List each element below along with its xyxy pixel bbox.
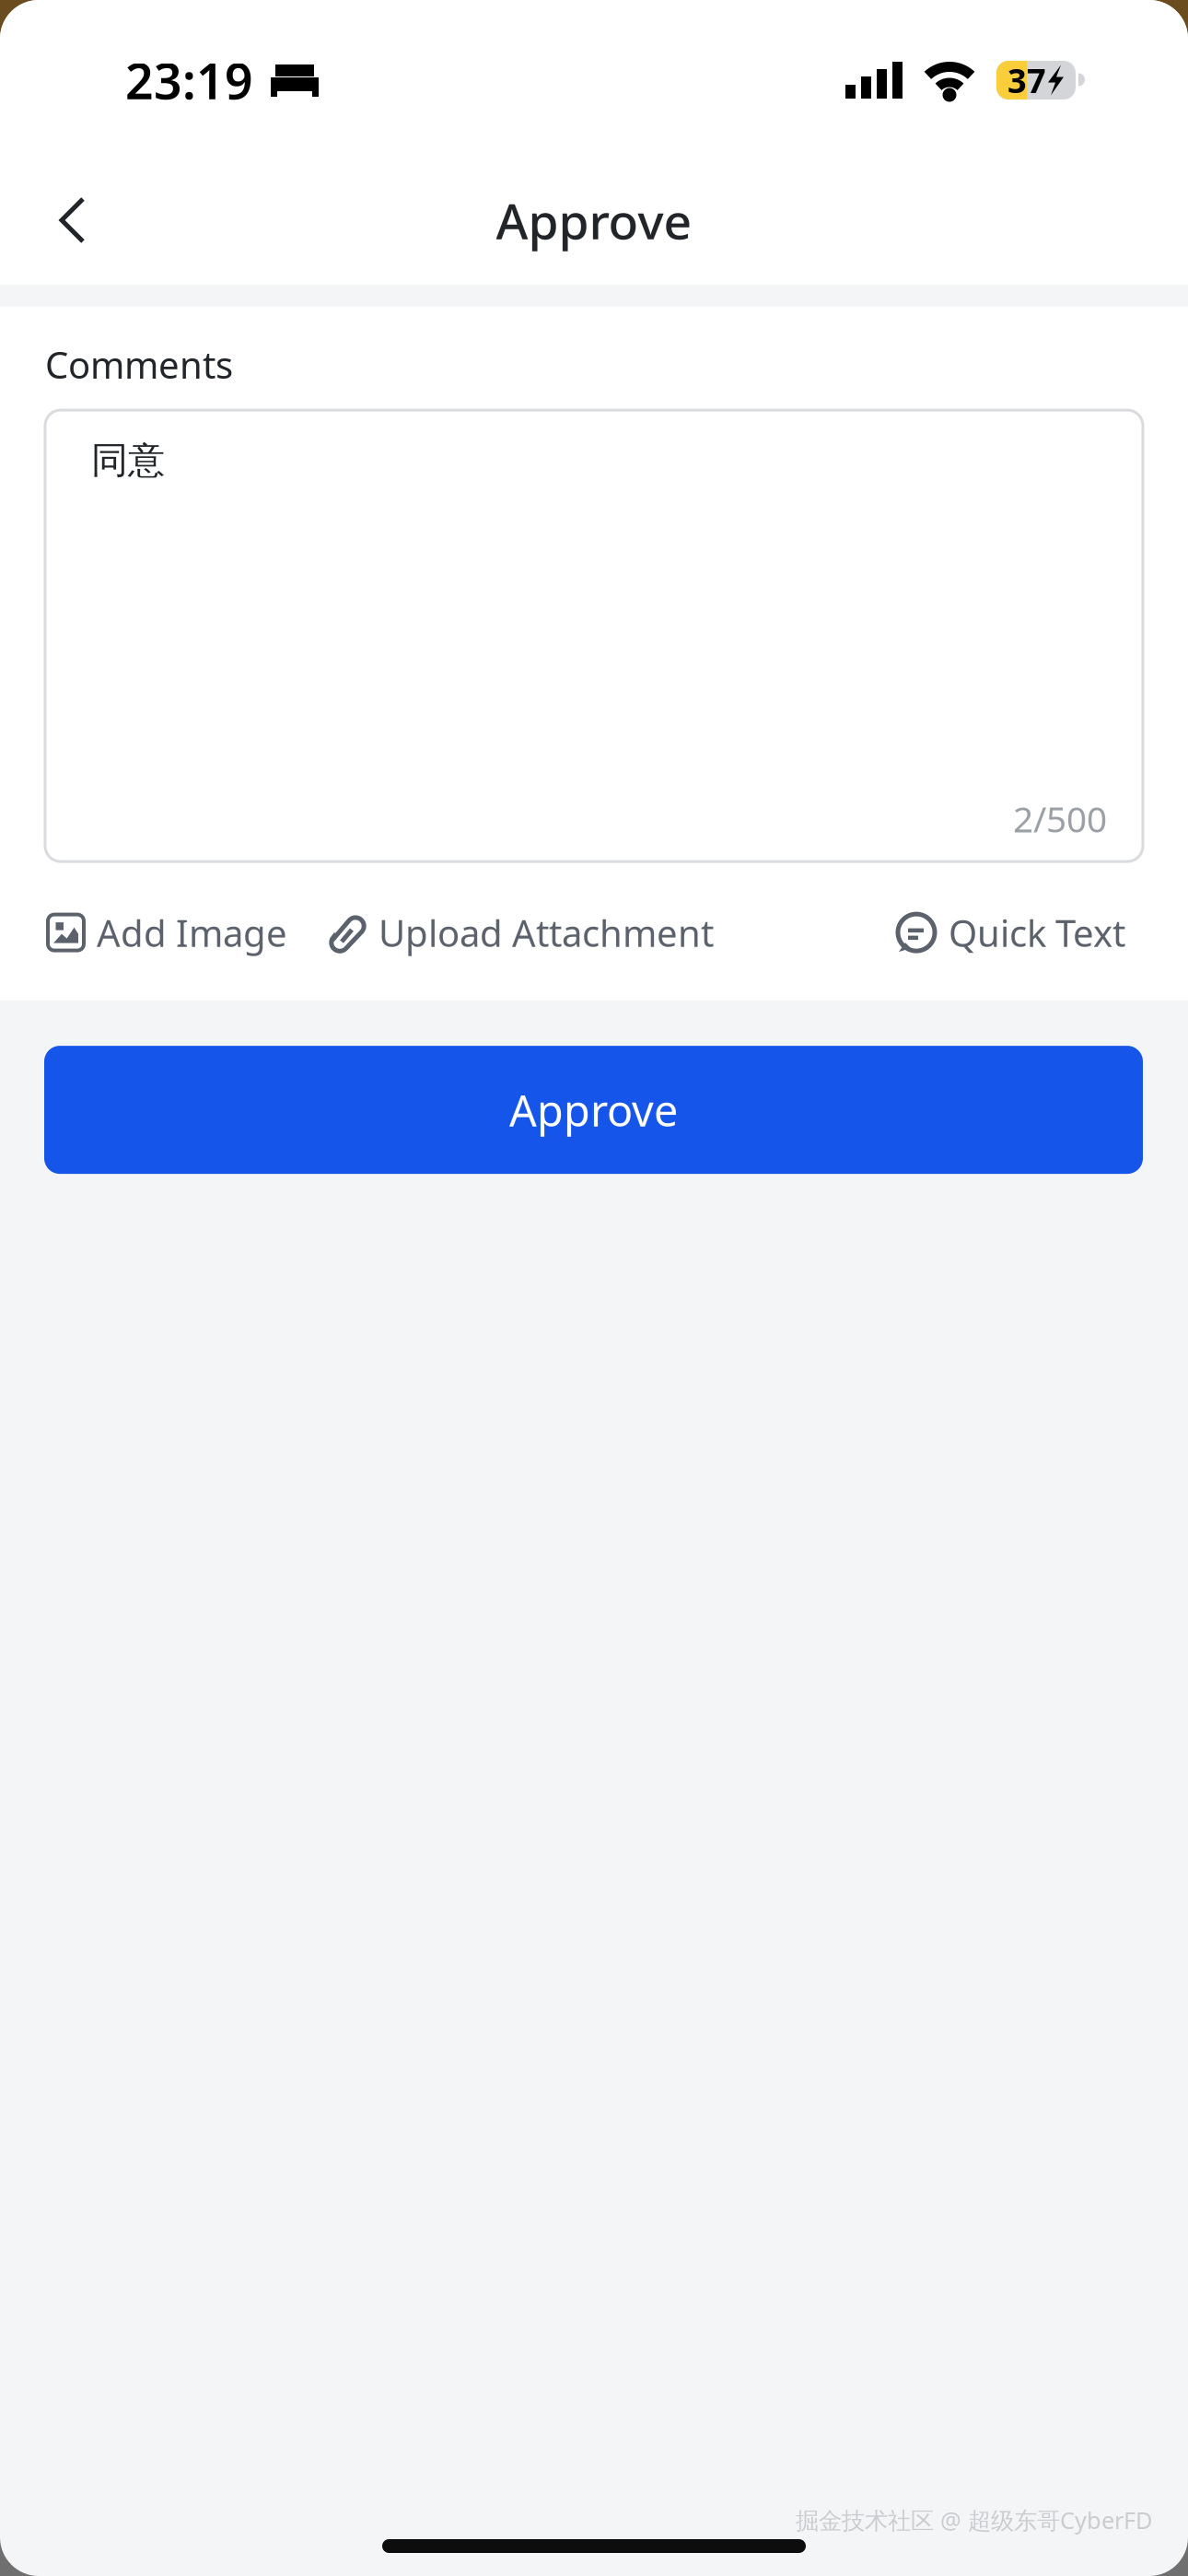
staticText: 2/500: [1013, 795, 1107, 842]
staticText: Upload Attachment: [379, 908, 714, 957]
button[interactable]: Approve: [44, 1046, 1143, 1174]
staticText: 37: [1007, 58, 1046, 102]
button[interactable]: Back: [30, 176, 113, 264]
staticText: Add Image: [97, 908, 287, 957]
staticText: Approve: [496, 188, 692, 253]
staticText: 掘金技术社区 @ 超级东哥CyberFD: [796, 2505, 1152, 2535]
staticText: 23:19: [125, 48, 253, 113]
staticText: 同意: [91, 438, 165, 483]
staticText: Approve: [509, 1081, 678, 1138]
staticText: Comments: [45, 340, 233, 389]
button[interactable]: Upload Attachment: [329, 908, 714, 957]
staticText: Quick Text: [949, 908, 1125, 957]
button[interactable]: Quick Text: [897, 908, 1125, 957]
button[interactable]: Add Image: [48, 908, 287, 957]
